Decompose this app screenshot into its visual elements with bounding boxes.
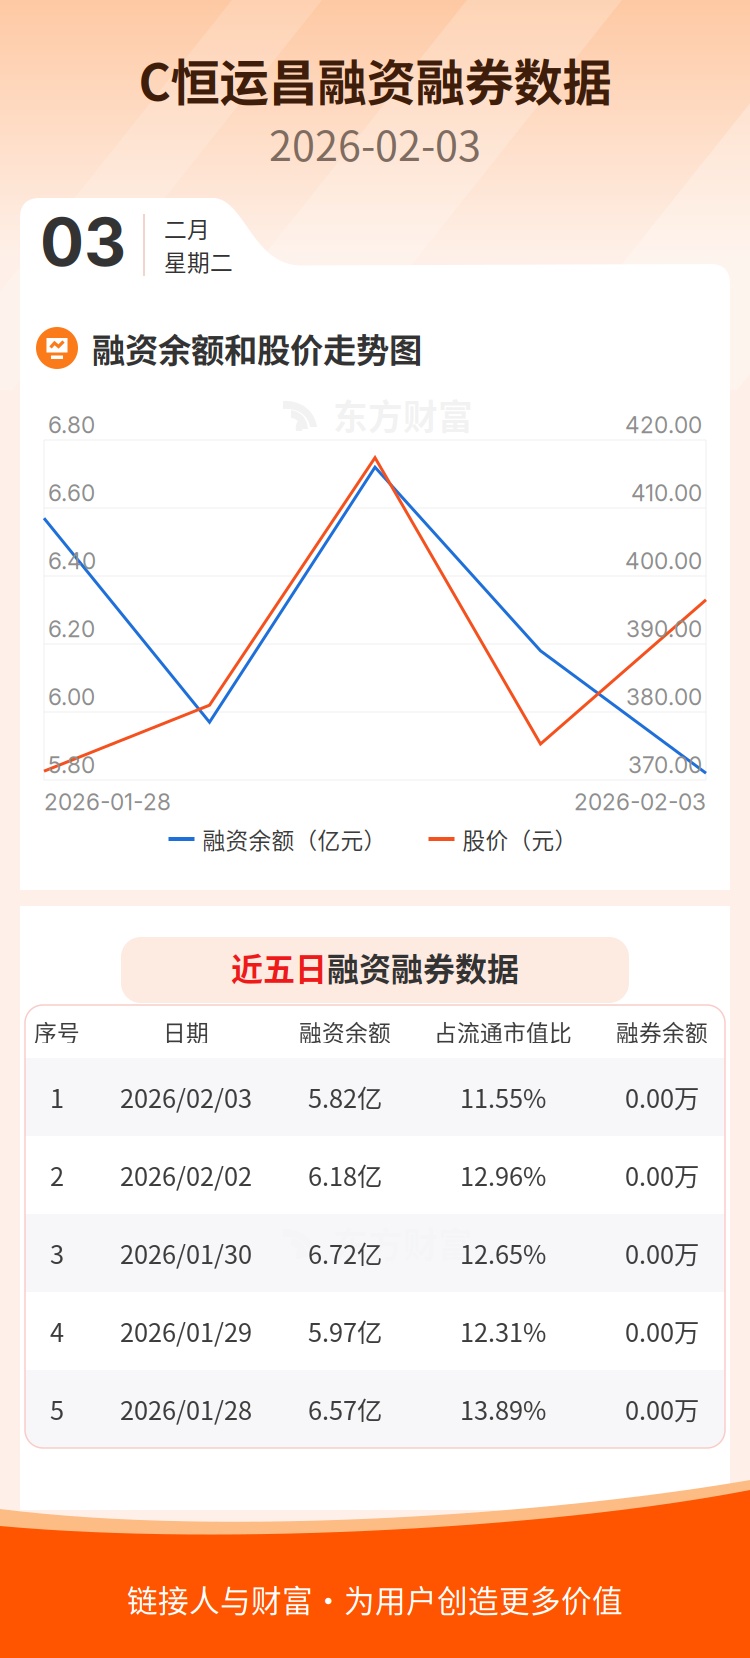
- staticText: 6.57亿: [308, 1391, 382, 1427]
- staticText: 星期二: [164, 245, 233, 277]
- staticText: 11.55%: [460, 1079, 546, 1115]
- staticText: 12.31%: [460, 1313, 546, 1349]
- staticText: 2026-02-03: [269, 113, 481, 173]
- staticText: 0.00万: [625, 1235, 699, 1271]
- staticText: C恒运昌融资融券数据: [138, 43, 611, 115]
- staticText: 380.00: [626, 683, 702, 711]
- staticText: 占流通市值比: [434, 1015, 572, 1048]
- staticText: 6.40: [48, 547, 96, 575]
- staticText: 410.00: [631, 479, 702, 507]
- staticText: 6.20: [48, 615, 95, 643]
- staticText: 2: [50, 1157, 64, 1193]
- staticText: 5.97亿: [308, 1313, 382, 1349]
- staticText: 融资余额和股价走势图: [92, 324, 422, 372]
- staticText: 日期: [163, 1015, 209, 1048]
- staticText: 370.00: [628, 751, 702, 779]
- staticText: 6.80: [48, 411, 95, 439]
- staticText: 近五日: [231, 944, 327, 990]
- staticText: 5.80: [48, 751, 95, 779]
- staticText: 2026/02/03: [120, 1079, 252, 1115]
- staticText: 融券余额: [616, 1015, 708, 1048]
- staticText: 420.00: [625, 411, 702, 439]
- staticText: 390.00: [626, 615, 702, 643]
- staticText: 2026/01/30: [120, 1235, 252, 1271]
- staticText: 6.60: [48, 479, 95, 507]
- staticText: 0.00万: [625, 1391, 699, 1427]
- staticText: 东方财富: [333, 1218, 473, 1268]
- staticText: 0.00万: [625, 1313, 699, 1349]
- staticText: 400.00: [625, 547, 702, 575]
- staticText: 融资余额（亿元）: [202, 823, 386, 855]
- staticText: 6.00: [48, 683, 95, 711]
- staticText: 0.00万: [625, 1079, 699, 1115]
- staticText: 12.65%: [460, 1235, 546, 1271]
- staticText: 6.72亿: [308, 1235, 382, 1271]
- staticText: 4: [50, 1313, 64, 1349]
- staticText: 东方财富: [333, 390, 473, 440]
- staticText: 12.96%: [460, 1157, 546, 1193]
- staticText: 序号: [34, 1015, 80, 1048]
- staticText: 融资余额: [299, 1015, 391, 1048]
- staticText: 2026/01/28: [120, 1391, 252, 1427]
- staticText: 2026-02-03: [574, 788, 706, 816]
- staticText: 5.82亿: [308, 1079, 382, 1115]
- staticText: 5: [50, 1391, 64, 1427]
- staticText: 融资融券数据: [327, 944, 519, 990]
- staticText: 0.00万: [625, 1157, 699, 1193]
- staticText: 03: [40, 202, 126, 281]
- staticText: 股价（元）: [462, 823, 577, 855]
- staticText: 链接人与财富·为用户创造更多价值: [127, 1577, 623, 1621]
- staticText: 6.18亿: [308, 1157, 382, 1193]
- staticText: 2026/02/02: [120, 1157, 252, 1193]
- staticText: 二月: [164, 212, 210, 244]
- staticText: 3: [50, 1235, 64, 1271]
- staticText: 2026/01/29: [120, 1313, 252, 1349]
- staticText: 13.89%: [460, 1391, 546, 1427]
- staticText: 2026-01-28: [44, 788, 171, 816]
- staticText: 1: [50, 1079, 64, 1115]
